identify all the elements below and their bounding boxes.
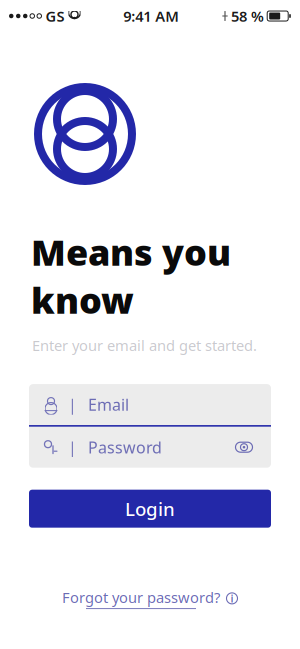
staticText: Email [88, 394, 129, 415]
staticText: 58 % [231, 6, 264, 26]
staticText: GS [45, 6, 64, 26]
staticText: Means you know [31, 228, 231, 324]
staticText: Password [88, 437, 162, 458]
staticText: Enter your email and get started. [32, 336, 257, 355]
staticText: Forgot your password? [62, 588, 220, 607]
button[interactable]: Show password [231, 435, 257, 459]
staticText: i [230, 591, 233, 605]
button[interactable]: Login [29, 490, 271, 528]
staticText: 9:41 AM [123, 6, 179, 26]
staticText: | [68, 394, 77, 415]
staticText: Login [125, 496, 175, 521]
staticText: | [68, 437, 77, 458]
button[interactable]: Forgot your password? [54, 582, 246, 615]
